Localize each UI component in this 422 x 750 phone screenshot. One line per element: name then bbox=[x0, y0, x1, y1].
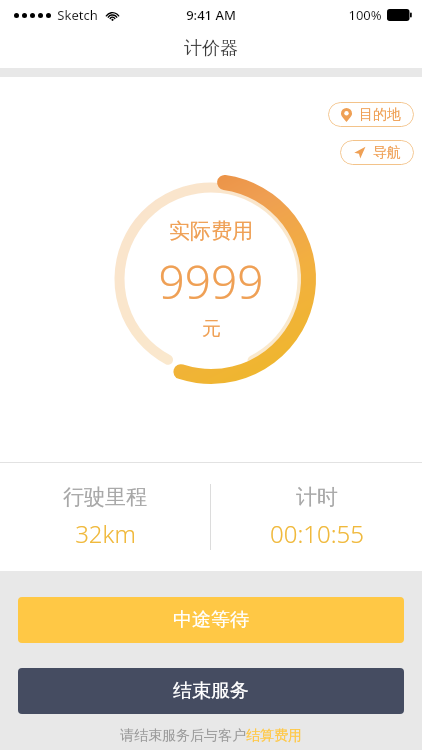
staticText: 实际费用 bbox=[169, 218, 253, 244]
button[interactable]: 计时 bbox=[211, 484, 422, 550]
staticText: 9:41 AM bbox=[186, 6, 236, 24]
staticText: 9999 bbox=[158, 250, 264, 313]
staticText: 结束服务 bbox=[173, 679, 249, 703]
staticText: Sketch bbox=[57, 6, 98, 24]
button[interactable]: 目的地 bbox=[328, 102, 414, 127]
staticText: 计价器 bbox=[184, 37, 238, 60]
staticText: 计时 bbox=[296, 484, 338, 510]
button[interactable]: 行驶里程 bbox=[0, 484, 210, 550]
staticText: 100% bbox=[348, 6, 382, 24]
button[interactable]: 中途等待 bbox=[18, 597, 404, 643]
staticText: 32km bbox=[75, 517, 136, 550]
staticText: 请结束服务后与客户结算费用 bbox=[120, 727, 302, 745]
staticText: 目的地 bbox=[359, 106, 401, 124]
staticText: 行驶里程 bbox=[63, 484, 147, 510]
button[interactable]: 导航 bbox=[340, 140, 414, 165]
staticText: 导航 bbox=[373, 144, 401, 162]
staticText: 中途等待 bbox=[173, 608, 249, 632]
staticText: 00:10:55 bbox=[270, 517, 364, 550]
button[interactable]: 结束服务 bbox=[18, 668, 404, 714]
staticText: 元 bbox=[202, 317, 221, 341]
